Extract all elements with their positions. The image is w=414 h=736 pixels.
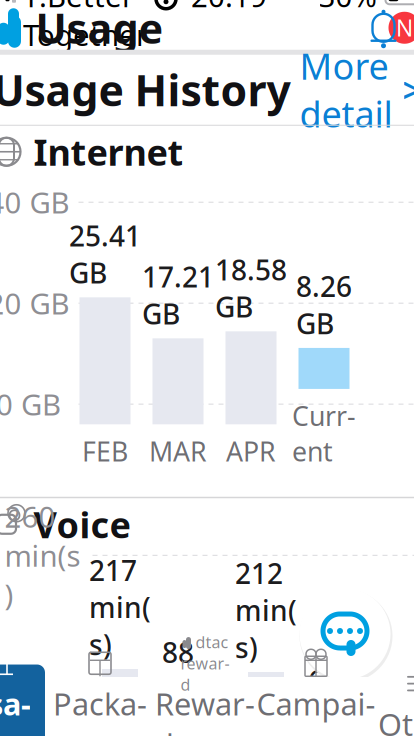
staticText: 212 min(s) [235,554,297,666]
staticText: Package [53,683,147,736]
staticText: 217 min(s) [89,551,151,663]
staticText: 260 min(s) [4,497,80,614]
button[interactable]: More detail [299,34,414,145]
staticText: Voice [33,500,130,548]
staticText: Other [378,704,414,736]
staticText: 60 min(s) [308,661,370,736]
staticText: N [396,13,413,43]
staticText: 20:19 [191,0,267,15]
staticText: Current [292,398,356,469]
button[interactable]: Usage [0,664,45,736]
button[interactable]: Notifications [368,7,414,49]
staticText: Usage [0,683,31,736]
staticText: MAR [149,433,207,469]
button[interactable]: Campaign [255,664,377,736]
staticText: 40 GB [0,183,69,222]
staticText: 130 min(s) [4,693,80,736]
staticText: Internet [33,128,183,176]
button[interactable]: Chat support [297,586,393,682]
staticText: reward [180,653,229,695]
staticText: 88 min(s) [162,633,224,736]
staticText: Usage [35,0,163,55]
staticText: > [402,68,414,112]
staticText: 30% [318,0,376,15]
staticText: 8.26 GB [296,268,352,342]
staticText: APR [226,433,276,469]
staticText: 0 GB [0,385,61,424]
button[interactable]: Package [45,664,155,736]
staticText: More detail [299,42,392,137]
staticText: Campaign [256,683,375,736]
button[interactable]: dtac [155,664,255,736]
staticText: FEB [82,433,128,469]
staticText: 25.41 GB [69,217,141,291]
staticText: Reward [155,683,255,736]
staticText: 17.21 GB [142,258,214,332]
button[interactable]: Other [377,664,414,736]
staticText: dtac-T:Better Together [23,0,148,54]
staticText: Usage History [0,61,290,118]
staticText: 20 GB [0,284,69,323]
staticText: dtac [195,631,228,653]
staticText: 18.58 GB [215,251,287,325]
